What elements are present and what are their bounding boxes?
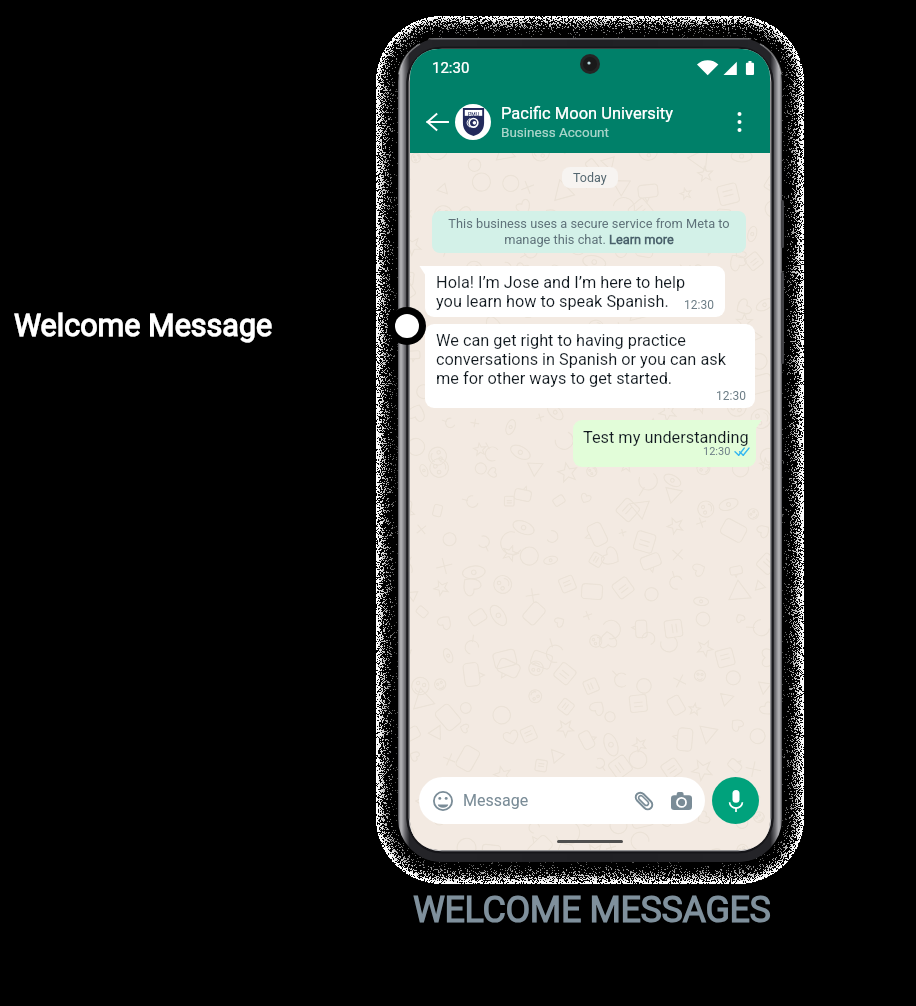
button[interactable]: Hola! I’m Jose and I’m here to help you … [425,266,725,317]
staticText: Business Account [501,124,609,140]
staticText: Today [573,170,607,185]
staticText: Hola! I’m Jose and I’m here to help you … [436,273,686,311]
staticText: We can get right to having practice conv… [436,331,746,388]
button[interactable]: Attach [631,788,657,814]
button[interactable]: Emoji [419,777,705,824]
staticText: 12:30 [432,59,470,77]
button[interactable]: We can get right to having practice conv… [425,324,755,408]
button[interactable]: Today [562,167,618,188]
button[interactable]: Camera [668,788,694,814]
staticText: 12:30 [684,298,714,312]
button[interactable]: This business uses a secure service from… [432,211,746,253]
staticText: PMU [468,111,480,117]
staticText: 12:30 [716,389,746,403]
button[interactable]: More options [722,105,756,139]
staticText: This business uses a secure service from… [442,216,736,248]
button[interactable]: Emoji [431,789,455,813]
staticText: Test my understanding [583,428,749,447]
button[interactable]: Test my understanding [573,420,756,467]
button[interactable]: PMU [455,91,722,153]
staticText: Message [463,791,529,810]
staticText: Welcome Message [14,308,273,344]
button[interactable]: Voice message [712,777,759,824]
staticText: 12:30 [703,445,731,458]
staticText: Pacific Moon University [501,104,674,123]
staticText: WELCOME MESSAGES [413,889,771,931]
button[interactable]: Back [420,105,454,139]
